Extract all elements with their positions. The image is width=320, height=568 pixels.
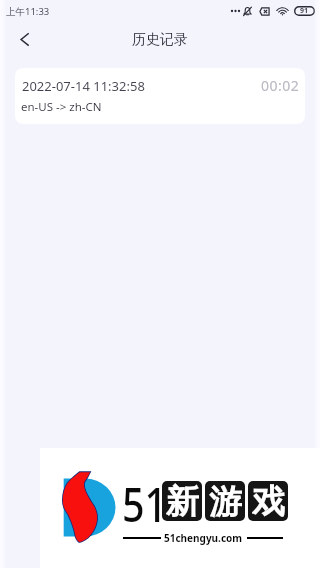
- staticText: 戏: [252, 481, 285, 521]
- staticText: 91: [300, 6, 309, 16]
- staticText: 00:02: [261, 76, 300, 95]
- staticText: 2022-07-14 11:32:58: [22, 77, 145, 95]
- staticText: 51: [122, 472, 167, 536]
- staticText: 游: [209, 481, 242, 521]
- staticText: 51chengyu.com: [164, 531, 243, 545]
- staticText: en-US -> zh-CN: [21, 99, 102, 115]
- button[interactable]: 2022-07-14 11:32:58: [15, 68, 305, 124]
- staticText: 历史记录: [132, 31, 188, 49]
- staticText: 上午11:33: [6, 5, 50, 18]
- button[interactable]: Back: [8, 23, 40, 55]
- staticText: 新: [166, 481, 199, 521]
